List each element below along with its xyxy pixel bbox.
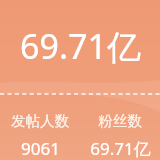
staticText: 69.71亿 bbox=[90, 137, 151, 160]
button[interactable]: 69.71亿 bbox=[0, 0, 160, 93]
staticText: 69.71亿 bbox=[20, 23, 141, 69]
button[interactable]: 粉丝数 bbox=[80, 95, 160, 160]
staticText: 9061 bbox=[21, 137, 60, 160]
staticText: 发帖人数 bbox=[11, 112, 69, 130]
button[interactable]: 发帖人数 bbox=[0, 95, 80, 160]
staticText: 粉丝数 bbox=[98, 112, 142, 130]
